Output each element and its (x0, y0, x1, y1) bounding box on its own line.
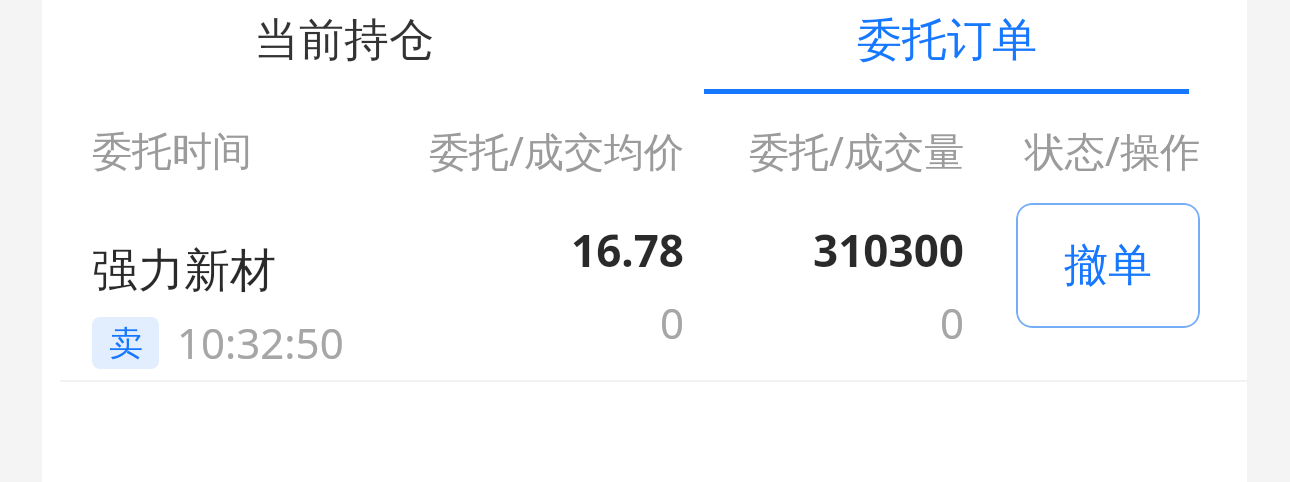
button[interactable]: 委托订单 (646, 0, 1247, 105)
staticText: 当前持仓 (254, 12, 434, 69)
staticText: 10:32:50 (177, 314, 344, 371)
staticText: 委托订单 (857, 12, 1037, 69)
staticText: 强力新材 (92, 242, 276, 300)
button[interactable]: 撤单 (1016, 203, 1200, 328)
staticText: 16.78 (570, 220, 684, 280)
staticText: 0 (659, 294, 684, 351)
staticText: 委托/成交均价 (429, 123, 684, 178)
staticText: 撤单 (1064, 238, 1152, 293)
button[interactable]: 强力新材 (42, 190, 1247, 380)
staticText: 状态/操作 (1025, 123, 1200, 178)
staticText: 卖 (109, 322, 143, 365)
staticText: 委托时间 (92, 126, 252, 176)
staticText: 委托/成交量 (749, 123, 964, 178)
staticText: 310300 (812, 220, 964, 280)
staticText: 0 (939, 294, 964, 351)
button[interactable]: 当前持仓 (42, 0, 646, 105)
